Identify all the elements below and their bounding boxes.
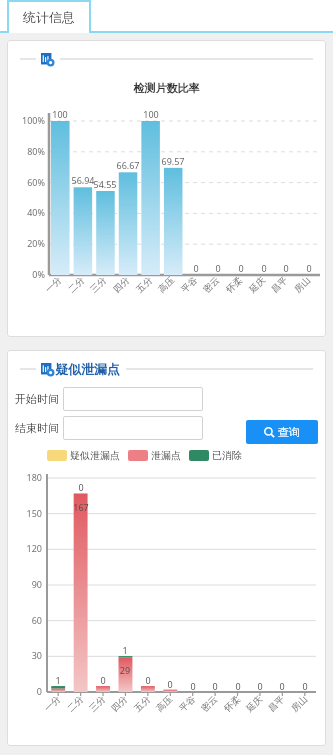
staticText: 1 — [111, 644, 139, 656]
staticText: 120 — [7, 542, 42, 554]
button[interactable]: 查询 — [246, 420, 318, 444]
staticText: 100 — [131, 108, 171, 120]
staticText: 二分 — [65, 693, 85, 714]
staticText: 80% — [7, 145, 45, 157]
staticText: 高压 — [154, 693, 174, 714]
staticText: 167 — [67, 501, 95, 513]
staticText: 开始时间 — [15, 392, 59, 406]
staticText: 昌平 — [266, 693, 286, 714]
staticText: 54.55 — [85, 178, 125, 190]
staticText: 延庆 — [247, 274, 267, 295]
staticText: 60% — [7, 176, 45, 188]
staticText: 0 — [291, 680, 319, 692]
other: Statistics — [41, 53, 54, 66]
staticText: 0 — [268, 680, 296, 692]
button[interactable]: 统计信息 — [7, 0, 91, 33]
staticText: 三分 — [88, 274, 108, 295]
staticText: 0 — [246, 680, 274, 692]
staticText: 150 — [7, 507, 42, 519]
staticText: 五分 — [132, 693, 152, 714]
button[interactable]: 已消除 — [189, 449, 242, 462]
staticText: 结束时间 — [15, 421, 59, 435]
staticText: 0 — [89, 674, 117, 686]
button[interactable] — [63, 416, 203, 440]
staticText: 四分 — [109, 693, 129, 714]
staticText: 0 — [201, 680, 229, 692]
staticText: 四分 — [111, 274, 131, 295]
staticText: 二分 — [66, 274, 86, 295]
staticText: 0 — [67, 481, 95, 493]
staticText: 平谷 — [177, 693, 197, 714]
staticText: 40% — [7, 206, 45, 218]
staticText: 昌平 — [269, 274, 289, 295]
staticText: 密云 — [201, 274, 221, 295]
staticText: 29 — [111, 664, 139, 676]
staticText: 0 — [198, 262, 238, 274]
staticText: 三分 — [87, 693, 107, 714]
staticText: 69.57 — [153, 155, 193, 167]
staticText: 统计信息 — [23, 9, 75, 25]
staticText: 已消除 — [212, 449, 242, 462]
staticText: 180 — [7, 471, 42, 483]
button[interactable]: 泄漏点 — [128, 449, 181, 462]
staticText: 疑似泄漏点 — [70, 449, 120, 462]
staticText: 泄漏点 — [151, 449, 181, 462]
button[interactable]: 疑似泄漏点 — [47, 449, 120, 462]
staticText: 0 — [289, 262, 329, 274]
staticText: 0 — [266, 262, 306, 274]
staticText: 0 — [221, 262, 261, 274]
staticText: 0 — [156, 678, 184, 690]
staticText: 高压 — [156, 274, 176, 295]
staticText: 100% — [7, 114, 45, 126]
staticText: 0 — [224, 680, 252, 692]
staticText: 五分 — [134, 274, 154, 295]
staticText: 一分 — [42, 693, 62, 714]
staticText: 60 — [7, 614, 42, 626]
staticText: 30 — [7, 649, 42, 661]
staticText: 疑似泄漏点 — [55, 361, 120, 377]
staticText: 密云 — [199, 693, 219, 714]
staticText: 一分 — [43, 274, 63, 295]
staticText: 0 — [134, 674, 162, 686]
staticText: 0 — [7, 685, 42, 697]
staticText: 延庆 — [244, 693, 264, 714]
staticText: 90 — [7, 578, 42, 590]
staticText: 检测片数比率 — [7, 81, 326, 95]
staticText: 56.94 — [63, 174, 103, 186]
staticText: 0 — [244, 262, 284, 274]
staticText: 100 — [40, 108, 80, 120]
staticText: 66.67 — [108, 159, 148, 171]
staticText: 平谷 — [179, 274, 199, 295]
staticText: 房山 — [289, 693, 309, 714]
staticText: 0 — [176, 262, 216, 274]
staticText: 怀柔 — [222, 693, 242, 714]
other: Statistics — [41, 363, 54, 376]
staticText: 房山 — [292, 274, 312, 295]
staticText: 1 — [44, 674, 72, 686]
staticText: 0% — [7, 268, 45, 280]
staticText: 0 — [179, 680, 207, 692]
staticText: 查询 — [278, 425, 300, 439]
button[interactable] — [63, 387, 203, 411]
staticText: 怀柔 — [224, 274, 244, 295]
staticText: 20% — [7, 237, 45, 249]
